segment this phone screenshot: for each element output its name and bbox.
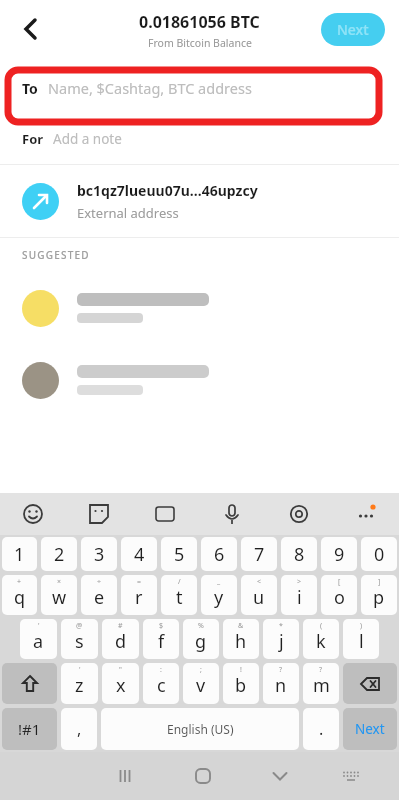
button[interactable]: GIF <box>132 493 198 535</box>
button[interactable]: / <box>161 575 197 615</box>
staticText: h <box>235 629 247 654</box>
button[interactable]: # <box>102 619 139 659</box>
button[interactable]: + <box>2 575 37 615</box>
staticText: [ <box>338 577 341 587</box>
button[interactable]: Recents <box>86 752 164 800</box>
button[interactable]: [ <box>321 575 357 615</box>
button[interactable] <box>0 344 399 416</box>
button[interactable]: * <box>263 619 299 659</box>
button[interactable]: 2 <box>41 537 77 571</box>
button[interactable]: Next <box>343 708 397 750</box>
button[interactable]: Shift <box>2 663 57 704</box>
staticText: Name, $Cashtag, BTC address <box>48 78 252 98</box>
button[interactable]: ' <box>61 663 98 704</box>
button[interactable]: ÷ <box>81 575 117 615</box>
staticText: f <box>158 629 165 654</box>
button[interactable]: & <box>223 619 259 659</box>
button[interactable]: % <box>183 619 219 659</box>
button[interactable]: Settings <box>265 493 332 535</box>
button[interactable]: : <box>143 663 179 704</box>
staticText: English (US) <box>167 721 234 737</box>
staticText: ? <box>319 665 323 675</box>
button[interactable]: Switch keyboard <box>318 752 384 800</box>
button[interactable]: 3 <box>81 537 117 571</box>
button[interactable]: Voice input <box>198 493 265 535</box>
button[interactable]: 5 <box>161 537 197 571</box>
button[interactable]: " <box>102 663 139 704</box>
staticText: : <box>160 665 162 675</box>
staticText: From Bitcoin Balance <box>148 36 252 50</box>
staticText: r <box>135 585 143 610</box>
button[interactable]: ; <box>183 663 219 704</box>
button[interactable]: , <box>61 708 97 750</box>
button[interactable]: @ <box>61 619 98 659</box>
staticText: e <box>94 585 105 610</box>
staticText: ' <box>79 665 81 675</box>
button[interactable]: bc1qz7lueuu07u…46upzcy <box>0 165 399 237</box>
button[interactable]: > <box>281 575 317 615</box>
button[interactable]: ' <box>20 619 57 659</box>
button[interactable]: < <box>241 575 277 615</box>
button[interactable]: = <box>121 575 157 615</box>
staticText: s <box>75 629 84 654</box>
button[interactable]: For <box>0 114 399 164</box>
button[interactable]: More <box>332 493 399 535</box>
button[interactable]: $ <box>143 619 179 659</box>
button[interactable]: Emoji <box>0 493 66 535</box>
staticText: 6 <box>214 542 225 567</box>
button[interactable]: Backspace <box>343 663 397 704</box>
button[interactable]: Stickers <box>66 493 132 535</box>
button[interactable]: _ <box>201 575 237 615</box>
staticText: % <box>198 621 204 631</box>
staticText: " <box>119 665 122 675</box>
button[interactable]: !#1 <box>2 708 57 750</box>
staticText: 5 <box>174 542 185 567</box>
staticText: Next <box>355 720 385 738</box>
button[interactable]: 4 <box>121 537 157 571</box>
button[interactable]: Back <box>6 7 54 55</box>
staticText: For <box>22 130 44 148</box>
staticText: a <box>33 629 44 654</box>
button[interactable]: 8 <box>281 537 317 571</box>
staticText: ' <box>38 621 40 631</box>
staticText: 8 <box>294 542 305 567</box>
button[interactable] <box>0 272 399 344</box>
button[interactable]: 1 <box>2 537 37 571</box>
staticText: _ <box>217 577 221 587</box>
staticText: / <box>178 577 181 587</box>
button[interactable]: 9 <box>321 537 357 571</box>
button[interactable]: To <box>0 62 399 114</box>
button[interactable]: ) <box>343 619 379 659</box>
button[interactable]: . <box>303 708 339 750</box>
staticText: m <box>313 673 330 698</box>
button[interactable]: 7 <box>241 537 277 571</box>
button[interactable]: ? <box>303 663 339 704</box>
staticText: y <box>214 585 224 610</box>
staticText: ) <box>360 621 363 631</box>
staticText: n <box>275 673 287 698</box>
staticText: j <box>279 629 284 654</box>
staticText: < <box>257 577 262 587</box>
button[interactable]: 6 <box>201 537 237 571</box>
staticText: ! <box>240 665 242 675</box>
button[interactable]: × <box>41 575 77 615</box>
button[interactable]: ( <box>303 619 339 659</box>
staticText: u <box>253 585 265 610</box>
staticText: bc1qz7lueuu07u…46upzcy <box>77 181 258 200</box>
button[interactable]: Hide keyboard <box>241 752 318 800</box>
button[interactable]: Home <box>164 752 241 800</box>
staticText: p <box>373 585 385 610</box>
button[interactable]: ! <box>223 663 259 704</box>
button[interactable]: ? <box>263 663 299 704</box>
staticText: > <box>297 577 302 587</box>
staticText: External address <box>77 204 179 222</box>
staticText: ] <box>378 577 381 587</box>
staticText: c <box>157 673 166 698</box>
staticText: # <box>118 621 123 631</box>
button[interactable]: ] <box>361 575 397 615</box>
staticText: Next <box>337 20 369 39</box>
button[interactable]: Next <box>321 13 385 46</box>
staticText: $ <box>159 621 164 631</box>
button[interactable]: 0 <box>361 537 397 571</box>
button[interactable]: English (US) <box>101 708 299 750</box>
